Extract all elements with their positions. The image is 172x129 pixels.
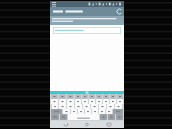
- button[interactable]: [67, 104, 74, 109]
- button[interactable]: [67, 94, 74, 99]
- button[interactable]: [68, 114, 99, 120]
- button[interactable]: Refresh: [115, 7, 124, 16]
- button[interactable]: [59, 99, 66, 104]
- button[interactable]: [71, 109, 77, 114]
- button[interactable]: [82, 99, 88, 104]
- button[interactable]: [59, 94, 66, 99]
- button[interactable]: [106, 109, 112, 114]
- button[interactable]: [107, 104, 114, 109]
- button[interactable]: [117, 99, 123, 104]
- button[interactable]: [96, 94, 102, 99]
- button[interactable]: [51, 94, 58, 99]
- button[interactable]: [92, 109, 98, 114]
- button[interactable]: [82, 94, 88, 99]
- button[interactable]: [113, 109, 123, 114]
- button[interactable]: [89, 94, 95, 99]
- button[interactable]: [110, 94, 116, 99]
- button[interactable]: [78, 109, 84, 114]
- button[interactable]: [60, 114, 67, 120]
- button[interactable]: [63, 109, 70, 114]
- button[interactable]: [51, 114, 59, 120]
- button[interactable]: [83, 104, 90, 109]
- button[interactable]: [99, 109, 105, 114]
- button[interactable]: [59, 104, 66, 109]
- button[interactable]: [103, 99, 109, 104]
- button[interactable]: [75, 104, 82, 109]
- button[interactable]: [91, 104, 98, 109]
- button[interactable]: [75, 94, 81, 99]
- button[interactable]: Home: [81, 121, 93, 128]
- button[interactable]: [75, 99, 81, 104]
- button[interactable]: [96, 99, 102, 104]
- button[interactable]: [53, 27, 121, 34]
- button[interactable]: [103, 94, 109, 99]
- button[interactable]: [116, 114, 123, 120]
- button[interactable]: [89, 99, 95, 104]
- button[interactable]: [52, 104, 58, 109]
- button[interactable]: [85, 109, 91, 114]
- button[interactable]: [117, 94, 123, 99]
- button[interactable]: [100, 114, 107, 120]
- button[interactable]: Refresh: [50, 7, 124, 16]
- button[interactable]: [51, 99, 58, 104]
- button[interactable]: [51, 109, 62, 114]
- button[interactable]: [115, 104, 122, 109]
- button[interactable]: Recents: [103, 121, 115, 128]
- button[interactable]: [108, 114, 115, 120]
- button[interactable]: [67, 99, 74, 104]
- button[interactable]: [110, 99, 116, 104]
- button[interactable]: Back: [60, 121, 72, 128]
- button[interactable]: [99, 104, 106, 109]
